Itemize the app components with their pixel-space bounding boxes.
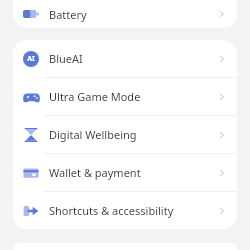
button[interactable]: AI bbox=[13, 40, 237, 77]
staticText: Ultra Game Mode bbox=[49, 89, 141, 104]
button[interactable]: Digital Wellbeing bbox=[13, 116, 237, 153]
staticText: AI bbox=[27, 54, 35, 64]
staticText: BlueAI bbox=[49, 51, 83, 66]
button[interactable]: Shortcuts & accessibility bbox=[13, 192, 237, 229]
staticText: Battery bbox=[49, 7, 87, 22]
staticText: Shortcuts & accessibility bbox=[49, 203, 174, 218]
button[interactable]: Battery bbox=[13, 0, 237, 28]
button[interactable]: Ultra Game Mode bbox=[13, 78, 237, 115]
staticText: Wallet & payment bbox=[49, 165, 141, 180]
staticText: Digital Wellbeing bbox=[49, 127, 137, 142]
button[interactable]: Wallet & payment bbox=[13, 154, 237, 191]
